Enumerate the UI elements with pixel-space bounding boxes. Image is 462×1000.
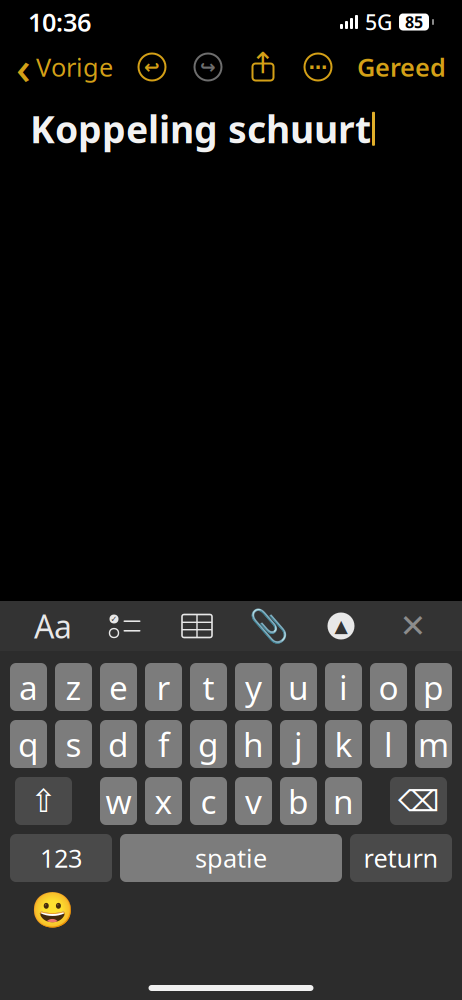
staticText: ↪	[200, 56, 216, 78]
staticText: b	[288, 779, 309, 823]
button[interactable]: 123	[10, 834, 112, 882]
staticText: y	[245, 665, 262, 709]
button[interactable]: b	[280, 777, 317, 825]
staticText: ⇧	[30, 783, 57, 819]
staticText: o	[378, 665, 398, 709]
button[interactable]: Format	[34, 609, 72, 643]
button[interactable]: u	[280, 663, 317, 711]
staticText: Vorige	[36, 50, 113, 84]
button[interactable]: p	[415, 663, 452, 711]
button[interactable]: return	[350, 834, 452, 882]
staticText: h	[243, 722, 264, 766]
staticText: v	[245, 779, 262, 823]
button[interactable]: Undo	[135, 50, 169, 84]
staticText: k	[334, 722, 352, 766]
staticText: m	[418, 722, 449, 766]
button[interactable]: s	[55, 720, 92, 768]
button[interactable]: x	[145, 777, 182, 825]
staticText: Koppeling schuurt	[30, 104, 371, 154]
staticText: ▲	[334, 616, 347, 636]
button[interactable]: m	[415, 720, 452, 768]
button[interactable]: z	[55, 663, 92, 711]
staticText: d	[108, 722, 129, 766]
staticText: s	[65, 722, 81, 766]
button[interactable]: Share	[243, 50, 283, 84]
button[interactable]: Markup	[322, 611, 360, 641]
staticText: e	[109, 665, 128, 709]
staticText: f	[158, 722, 169, 766]
staticText: Gereed	[357, 50, 446, 84]
button[interactable]: j	[280, 720, 317, 768]
button[interactable]: t	[190, 663, 227, 711]
button[interactable]: v	[235, 777, 272, 825]
staticText: 😀	[30, 890, 73, 930]
button[interactable]: q	[10, 720, 47, 768]
button[interactable]: Redo	[191, 50, 225, 84]
staticText: t	[202, 665, 214, 709]
button[interactable]: ‹	[12, 37, 117, 97]
staticText: ‹	[16, 37, 31, 97]
button[interactable]: f	[145, 720, 182, 768]
staticText: q	[18, 722, 39, 766]
staticText: z	[65, 665, 81, 709]
staticText: l	[384, 722, 393, 766]
button[interactable]: y	[235, 663, 272, 711]
staticText: spatie	[195, 841, 267, 875]
staticText: ⌫	[398, 784, 439, 818]
staticText: ↩	[144, 56, 160, 78]
button[interactable]: Gereed	[353, 50, 450, 84]
staticText: x	[154, 779, 172, 823]
staticText: g	[198, 722, 219, 766]
button[interactable]: e	[100, 663, 137, 711]
staticText: a	[19, 665, 38, 709]
staticText: ✕	[399, 608, 426, 644]
staticText: 85	[405, 11, 423, 33]
button[interactable]: Shift	[15, 777, 72, 825]
button[interactable]: l	[370, 720, 407, 768]
staticText: r	[156, 665, 170, 709]
staticText: c	[200, 779, 216, 823]
staticText: Aa	[34, 605, 72, 647]
staticText: n	[333, 779, 354, 823]
button[interactable]: Emoji	[32, 890, 72, 930]
button[interactable]: n	[325, 777, 362, 825]
button[interactable]: r	[145, 663, 182, 711]
staticText: 10:36	[28, 5, 91, 39]
button[interactable]: h	[235, 720, 272, 768]
staticText: w	[105, 779, 131, 823]
button[interactable]: Close keyboard	[394, 609, 432, 643]
button[interactable]: k	[325, 720, 362, 768]
staticText: return	[363, 841, 438, 875]
button[interactable]: Table	[178, 611, 216, 641]
button[interactable]: More	[301, 50, 335, 84]
button[interactable]: o	[370, 663, 407, 711]
staticText: 5G	[365, 8, 393, 36]
button[interactable]: c	[190, 777, 227, 825]
staticText: ↑	[250, 46, 275, 80]
staticText: p	[423, 665, 444, 709]
button[interactable]: a	[10, 663, 47, 711]
button[interactable]: spatie	[120, 834, 342, 882]
button[interactable]: d	[100, 720, 137, 768]
button[interactable]: g	[190, 720, 227, 768]
button[interactable]: i	[325, 663, 362, 711]
staticText: i	[339, 665, 348, 709]
staticText: ⋯	[308, 56, 327, 78]
button[interactable]: Checklist	[106, 611, 144, 641]
staticText: ✓	[110, 614, 117, 624]
staticText: j	[294, 722, 303, 766]
button[interactable]: Attach	[250, 609, 288, 643]
staticText: 123	[40, 841, 82, 875]
staticText: u	[288, 665, 309, 709]
staticText: 📎	[249, 608, 289, 644]
button[interactable]: Delete	[390, 777, 447, 825]
button[interactable]: w	[100, 777, 137, 825]
